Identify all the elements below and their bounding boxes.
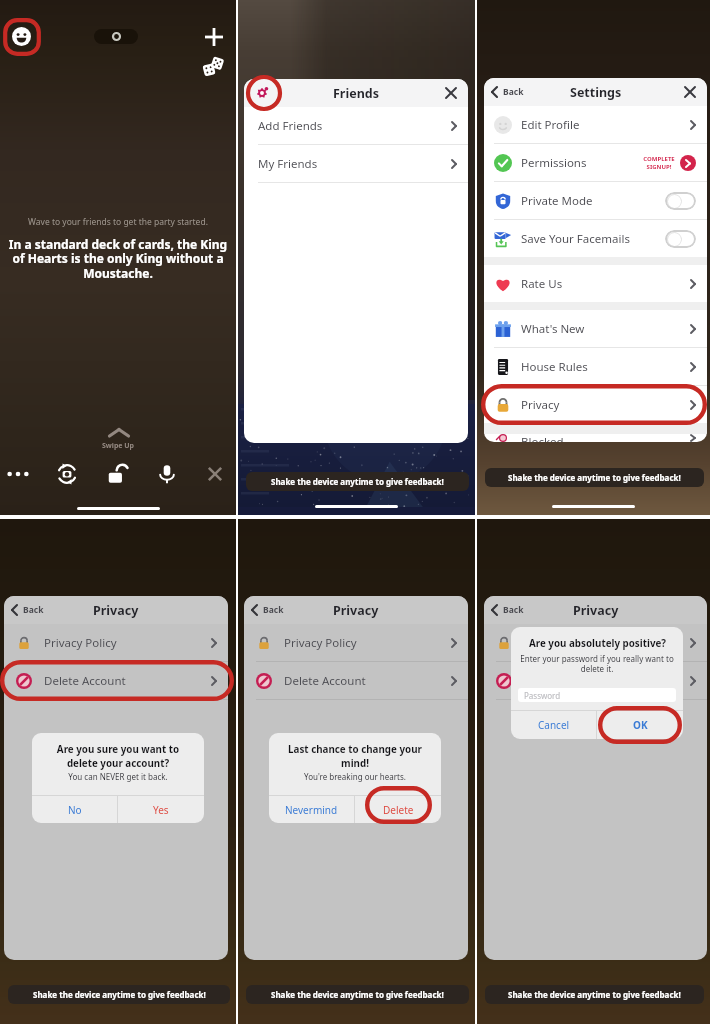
staticText: Friends <box>333 85 379 102</box>
button[interactable]: Privacy Policy <box>4 624 228 661</box>
staticText: Privacy <box>93 602 139 619</box>
button[interactable]: Edit Profile <box>484 106 707 143</box>
staticText: My Friends <box>258 156 318 172</box>
staticText: Settings <box>570 84 622 101</box>
button[interactable]: Delete Account <box>484 662 707 699</box>
staticText: Save Your Facemails <box>521 231 630 247</box>
staticText: Are you absolutely positive? <box>529 637 666 650</box>
button[interactable]: Close <box>682 84 698 100</box>
staticText: Back <box>503 604 524 616</box>
button[interactable]: Blocked <box>484 434 707 442</box>
staticText: COMPLETE SIGNUP! <box>643 155 675 171</box>
staticText: Private Mode <box>521 193 593 209</box>
button[interactable]: Private Mode <box>484 182 707 219</box>
button[interactable]: Password <box>518 688 676 702</box>
button[interactable] <box>665 192 696 210</box>
staticText: Privacy Policy <box>524 635 597 651</box>
staticText: Shake the device anytime to give feedbac… <box>508 989 681 1000</box>
button[interactable]: Permissions <box>484 144 707 181</box>
button[interactable]: Nevermind <box>269 796 354 823</box>
staticText: Wave to your friends to get the party st… <box>0 216 236 228</box>
staticText: Enter your password if you really want t… <box>519 653 675 674</box>
staticText: Delete Account <box>524 673 606 689</box>
staticText: Privacy Policy <box>284 635 357 651</box>
staticText: Shake the device anytime to give feedbac… <box>33 989 206 1000</box>
staticText: Shake the device anytime to give feedbac… <box>271 989 444 1000</box>
staticText: Privacy Policy <box>44 635 117 651</box>
staticText: Blocked <box>521 434 564 442</box>
staticText: Privacy <box>333 602 379 619</box>
staticText: Privacy <box>521 397 560 413</box>
staticText: What's New <box>521 321 585 337</box>
staticText: Permissions <box>521 155 587 171</box>
staticText: Shake the device anytime to give feedbac… <box>508 472 681 483</box>
button[interactable]: My Friends <box>244 145 468 182</box>
button[interactable]: Save Your Facemails <box>484 220 707 257</box>
staticText: Last chance to change your mind! <box>278 743 432 769</box>
staticText: OK <box>633 718 648 732</box>
button[interactable]: Add Friends <box>244 107 468 144</box>
button[interactable]: Mute <box>156 463 178 485</box>
staticText: Password <box>524 690 561 701</box>
staticText: Back <box>263 604 284 616</box>
button[interactable]: Back <box>484 78 530 106</box>
staticText: Swipe Up <box>0 441 236 451</box>
staticText: Edit Profile <box>521 117 580 133</box>
button[interactable]: House Rules <box>484 348 707 385</box>
staticText: Delete Account <box>44 673 126 689</box>
staticText: Yes <box>153 803 169 817</box>
button[interactable]: Close <box>204 463 226 485</box>
button[interactable]: Cancel <box>511 711 596 739</box>
button[interactable]: Add <box>204 27 224 47</box>
button[interactable]: Delete <box>355 796 441 823</box>
button[interactable]: No <box>32 796 117 823</box>
button[interactable]: More options <box>7 463 29 485</box>
staticText: Shake the device anytime to give feedbac… <box>271 476 444 487</box>
staticText: Add Friends <box>258 118 323 134</box>
staticText: In a standard deck of cards, the King of… <box>5 236 231 282</box>
staticText: Privacy <box>573 602 619 619</box>
staticText: No <box>68 803 82 817</box>
button[interactable]: Back <box>4 596 50 624</box>
staticText: Back <box>23 604 44 616</box>
button[interactable]: Settings <box>255 86 269 100</box>
button[interactable]: OK <box>597 711 683 739</box>
staticText: You're breaking our hearts. <box>304 771 406 782</box>
staticText: Rate Us <box>521 276 563 292</box>
button[interactable]: Random game <box>202 54 224 76</box>
staticText: Nevermind <box>285 803 338 817</box>
button[interactable]: Rate Us <box>484 265 707 302</box>
button[interactable]: Privacy Policy <box>244 624 468 661</box>
button[interactable]: What's New <box>484 310 707 347</box>
staticText: Cancel <box>538 718 570 732</box>
button[interactable]: Profile <box>12 27 31 46</box>
button[interactable]: Privacy Policy <box>484 624 707 661</box>
button[interactable]: Close <box>443 85 459 101</box>
button[interactable]: Delete Account <box>244 662 468 699</box>
staticText: Are you sure you want to delete your acc… <box>41 743 195 769</box>
staticText: You can NEVER get it back. <box>68 771 168 782</box>
button[interactable]: Privacy <box>484 386 707 423</box>
staticText: House Rules <box>521 359 588 375</box>
button[interactable]: Yes <box>118 796 204 823</box>
button[interactable]: Lock room <box>107 463 129 485</box>
staticText: Back <box>503 86 524 98</box>
staticText: Delete <box>383 803 414 817</box>
button[interactable]: Back <box>484 596 530 624</box>
button[interactable]: Delete Account <box>4 662 228 699</box>
button[interactable]: Back <box>244 596 290 624</box>
staticText: Delete Account <box>284 673 366 689</box>
button[interactable]: Flip camera <box>56 463 78 485</box>
button[interactable] <box>665 230 696 248</box>
